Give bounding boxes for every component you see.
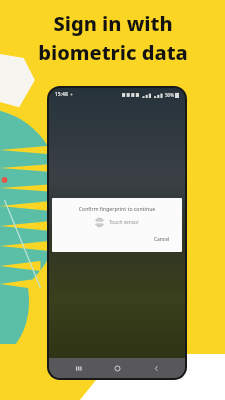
- button[interactable]: Recents: [68, 358, 88, 378]
- staticText: Touch sensor: [109, 219, 139, 226]
- staticText: Cancel: [154, 236, 170, 243]
- staticText: Confirm fingerprint to continue: [60, 205, 174, 212]
- staticText: biometric data: [38, 39, 188, 66]
- button[interactable]: Cancel: [150, 234, 174, 245]
- button[interactable]: Home: [107, 358, 127, 378]
- staticText: Sign in with: [53, 10, 173, 37]
- staticText: 50%: [165, 92, 174, 98]
- button[interactable]: Back: [146, 358, 166, 378]
- staticText: 15:48: [55, 91, 68, 98]
- other: Fingerprint: [95, 218, 104, 227]
